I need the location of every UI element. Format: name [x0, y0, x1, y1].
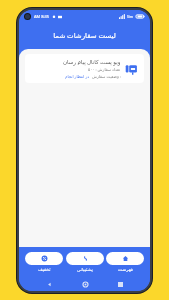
staticText: فهرست	[118, 267, 133, 272]
staticText: در انتظار انجام	[65, 74, 90, 79]
staticText: تعداد سفارش : ۵۰۰	[88, 67, 121, 72]
staticText: ویو پست کانال پیام رسان	[63, 58, 121, 65]
staticText: Sim	[127, 14, 134, 19]
button[interactable]: Home	[80, 279, 90, 289]
button[interactable]: Home	[105, 252, 145, 272]
staticText: AM 8:35	[34, 14, 50, 19]
button[interactable]: Back	[44, 279, 54, 289]
staticText: تخفیف	[38, 267, 51, 272]
button[interactable]: ویو پست کانال پیام رسان	[25, 54, 144, 83]
button[interactable]: Recents	[115, 279, 125, 289]
staticText: پشتیبانی	[77, 267, 93, 272]
staticText: وضعیت سفارش :	[92, 74, 121, 79]
staticText: لیست سفارشات شما	[53, 31, 116, 41]
button[interactable]: Support	[65, 252, 105, 272]
button[interactable]: Discounts	[24, 252, 64, 272]
